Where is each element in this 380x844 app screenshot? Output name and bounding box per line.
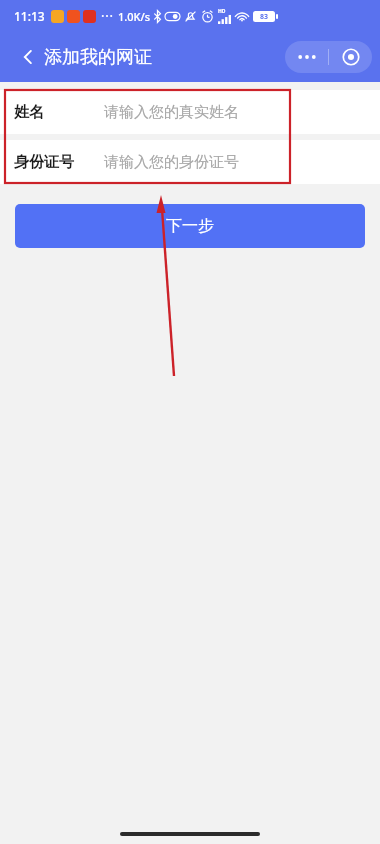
button[interactable]: 身份证号 [0,140,380,184]
staticText: 请输入您的身份证号 [104,153,239,172]
button[interactable]: 下一步 [15,204,365,248]
button[interactable]: 姓名 [0,90,380,134]
button[interactable]: More [285,41,328,73]
staticText: 姓名 [14,103,44,122]
staticText: 11:13 [14,8,45,24]
staticText: 下一步 [166,216,214,236]
staticText: 83 [260,12,269,22]
staticText: HD [218,8,226,15]
button[interactable]: Close [329,41,372,73]
staticText: 添加我的网证 [44,46,152,69]
button[interactable]: Back [8,37,48,77]
staticText: 1.0K/s [118,9,151,24]
staticText: 请输入您的真实姓名 [104,103,239,122]
staticText: 身份证号 [14,153,74,172]
